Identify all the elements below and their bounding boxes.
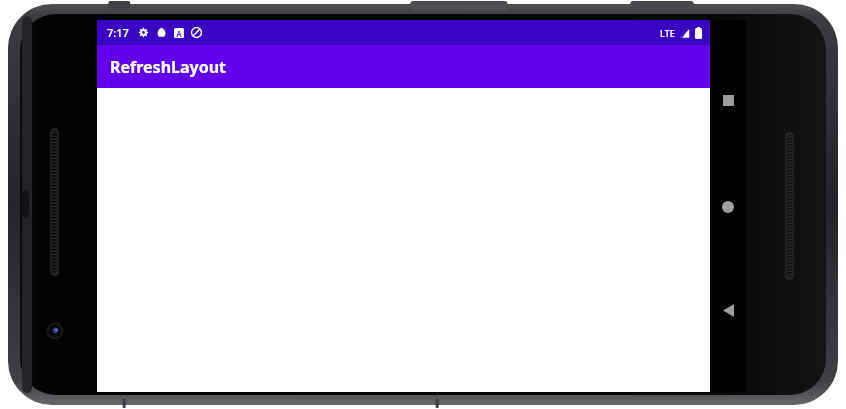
button[interactable]: RefreshLayout [97, 45, 710, 88]
staticText: LTE [660, 27, 675, 39]
button[interactable]: Back [710, 292, 746, 328]
staticText: 7:17 [107, 25, 129, 40]
button[interactable]: Recent apps [710, 82, 746, 118]
staticText: A [176, 28, 182, 38]
staticText: RefreshLayout [110, 56, 227, 78]
button[interactable]: Home [710, 189, 746, 225]
